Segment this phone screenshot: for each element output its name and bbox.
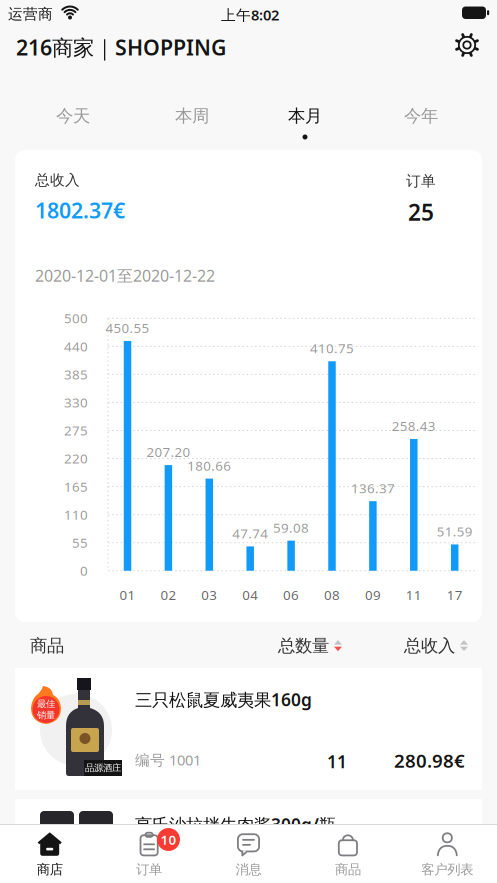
staticText: 今年 (404, 105, 438, 127)
staticText: 最佳 (37, 698, 55, 709)
staticText: 总数量 (278, 635, 329, 656)
staticText: 商品 (335, 861, 361, 878)
staticText: 09 (365, 586, 381, 604)
staticText: 59.08 (273, 519, 309, 536)
staticText: 订单 (406, 172, 436, 190)
staticText: 410.75 (310, 339, 354, 357)
staticText: 165 (64, 478, 88, 495)
staticText: 440 (64, 337, 88, 355)
button[interactable]: 亨氏沙拉拌牛肉酱300g/瓶 (15, 799, 482, 883)
staticText: 216商家｜SHOPPING (16, 33, 226, 61)
staticText: 2020-12-01至2020-12-22 (35, 265, 215, 286)
staticText: 220 (64, 450, 88, 467)
staticText: 消息 (235, 861, 261, 878)
staticText: 55 (72, 534, 88, 551)
staticText: 商品 (30, 635, 64, 656)
button[interactable]: 客户列表 (398, 827, 497, 882)
button[interactable]: 订单 (100, 827, 199, 882)
staticText: 51.59 (437, 522, 473, 540)
staticText: 销量 (37, 709, 55, 721)
staticText: 品源酒庄 (85, 762, 121, 774)
staticText: 47.74 (232, 524, 268, 542)
button[interactable]: 本周 (147, 98, 237, 134)
staticText: 04 (242, 586, 258, 604)
staticText: 03 (201, 586, 217, 604)
staticText: 450.55 (105, 319, 149, 337)
button[interactable]: 最佳 (15, 668, 482, 790)
button[interactable]: 今天 (28, 98, 118, 134)
staticText: 本月 (288, 105, 322, 127)
staticText: 1802.37€ (35, 196, 125, 224)
staticText: 上午8:02 (221, 5, 279, 24)
button[interactable]: 消息 (199, 827, 298, 882)
staticText: 亨氏沙拉拌牛肉酱300g/瓶 (135, 813, 336, 836)
staticText: 商店 (37, 861, 63, 878)
staticText: 08 (324, 586, 340, 604)
staticText: 本周 (175, 105, 209, 127)
staticText: 运营商 (8, 5, 53, 23)
staticText: 11 (406, 586, 422, 604)
staticText: 今天 (56, 105, 90, 127)
button[interactable]: 本月 (260, 98, 350, 134)
staticText: 三只松鼠夏威夷果160g (135, 688, 312, 711)
staticText: 02 (160, 586, 176, 604)
staticText: 订单 (136, 861, 162, 878)
staticText: 25 (408, 197, 434, 227)
staticText: 385 (64, 365, 88, 383)
button[interactable]: 设置 (452, 30, 482, 60)
staticText: 0 (80, 562, 88, 579)
staticText: 17 (447, 586, 463, 604)
staticText: 136.37 (351, 479, 395, 497)
staticText: 客户列表 (421, 861, 473, 878)
button[interactable]: 总收入 (404, 635, 468, 656)
staticText: 258.43 (392, 417, 436, 435)
button[interactable]: 商店 (0, 827, 99, 882)
button[interactable]: 总数量 (278, 635, 342, 656)
staticText: 11 (327, 750, 347, 773)
staticText: 总收入 (404, 635, 455, 656)
staticText: 编号 1001 (135, 750, 201, 769)
staticText: 280.98€ (394, 748, 465, 773)
button[interactable]: 今年 (376, 98, 466, 134)
staticText: 110 (64, 506, 88, 523)
button[interactable]: 商品 (298, 827, 397, 882)
staticText: 06 (283, 586, 299, 604)
staticText: 总收入 (35, 171, 80, 189)
staticText: 275 (64, 421, 88, 439)
staticText: 180.66 (187, 457, 231, 474)
staticText: 330 (64, 393, 88, 411)
staticText: 207.20 (146, 443, 190, 461)
staticText: 500 (64, 309, 88, 327)
staticText: 10 (160, 831, 176, 848)
staticText: 01 (119, 586, 135, 604)
